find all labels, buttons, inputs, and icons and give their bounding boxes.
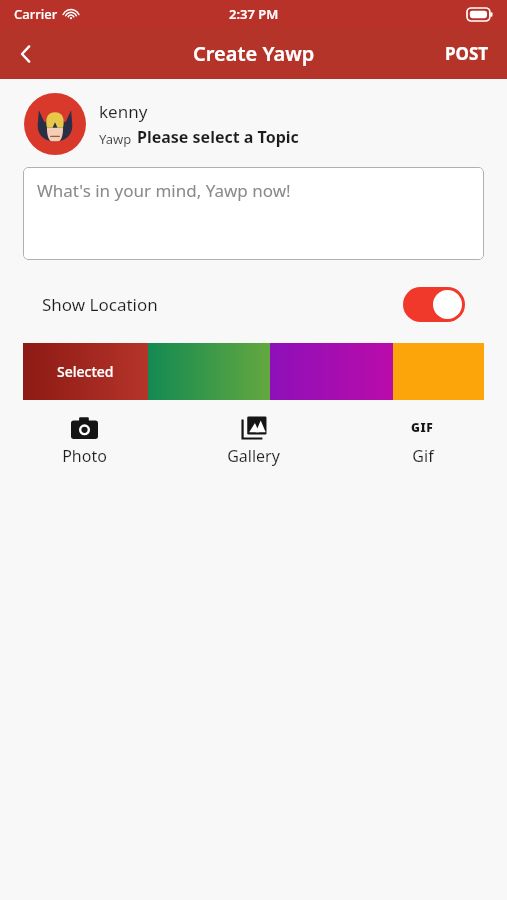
staticText: What's in your mind, Yawp now! xyxy=(37,179,291,202)
other: Show Location toggle xyxy=(403,287,465,322)
staticText: Gif xyxy=(412,445,434,467)
staticText: Create Yawp xyxy=(193,40,315,67)
button[interactable]: GIF xyxy=(338,408,507,473)
button[interactable]: Green background xyxy=(148,343,270,400)
button[interactable]: What's in your mind, Yawp now! xyxy=(23,167,484,260)
staticText: GIF xyxy=(411,419,434,435)
button[interactable]: Gallery xyxy=(169,408,338,473)
button[interactable]: Purple background xyxy=(270,343,393,400)
staticText: Show Location xyxy=(42,293,158,316)
staticText: Selected xyxy=(57,362,114,381)
button[interactable]: Selected xyxy=(23,343,148,400)
button[interactable]: Photo xyxy=(0,408,169,473)
button[interactable]: Back xyxy=(0,28,52,79)
button[interactable]: Show Location xyxy=(42,287,465,322)
staticText: 2:37 PM xyxy=(229,5,279,23)
staticText: Gallery xyxy=(227,445,280,467)
staticText: POST xyxy=(445,42,489,65)
staticText: Please select a Topic xyxy=(137,126,299,148)
button[interactable]: POST xyxy=(427,28,507,79)
staticText: Yawp xyxy=(99,130,132,148)
staticText: kenny xyxy=(99,100,148,123)
button[interactable]: kenny xyxy=(24,93,507,155)
staticText: Photo xyxy=(62,445,107,467)
staticText: Carrier xyxy=(14,5,58,23)
